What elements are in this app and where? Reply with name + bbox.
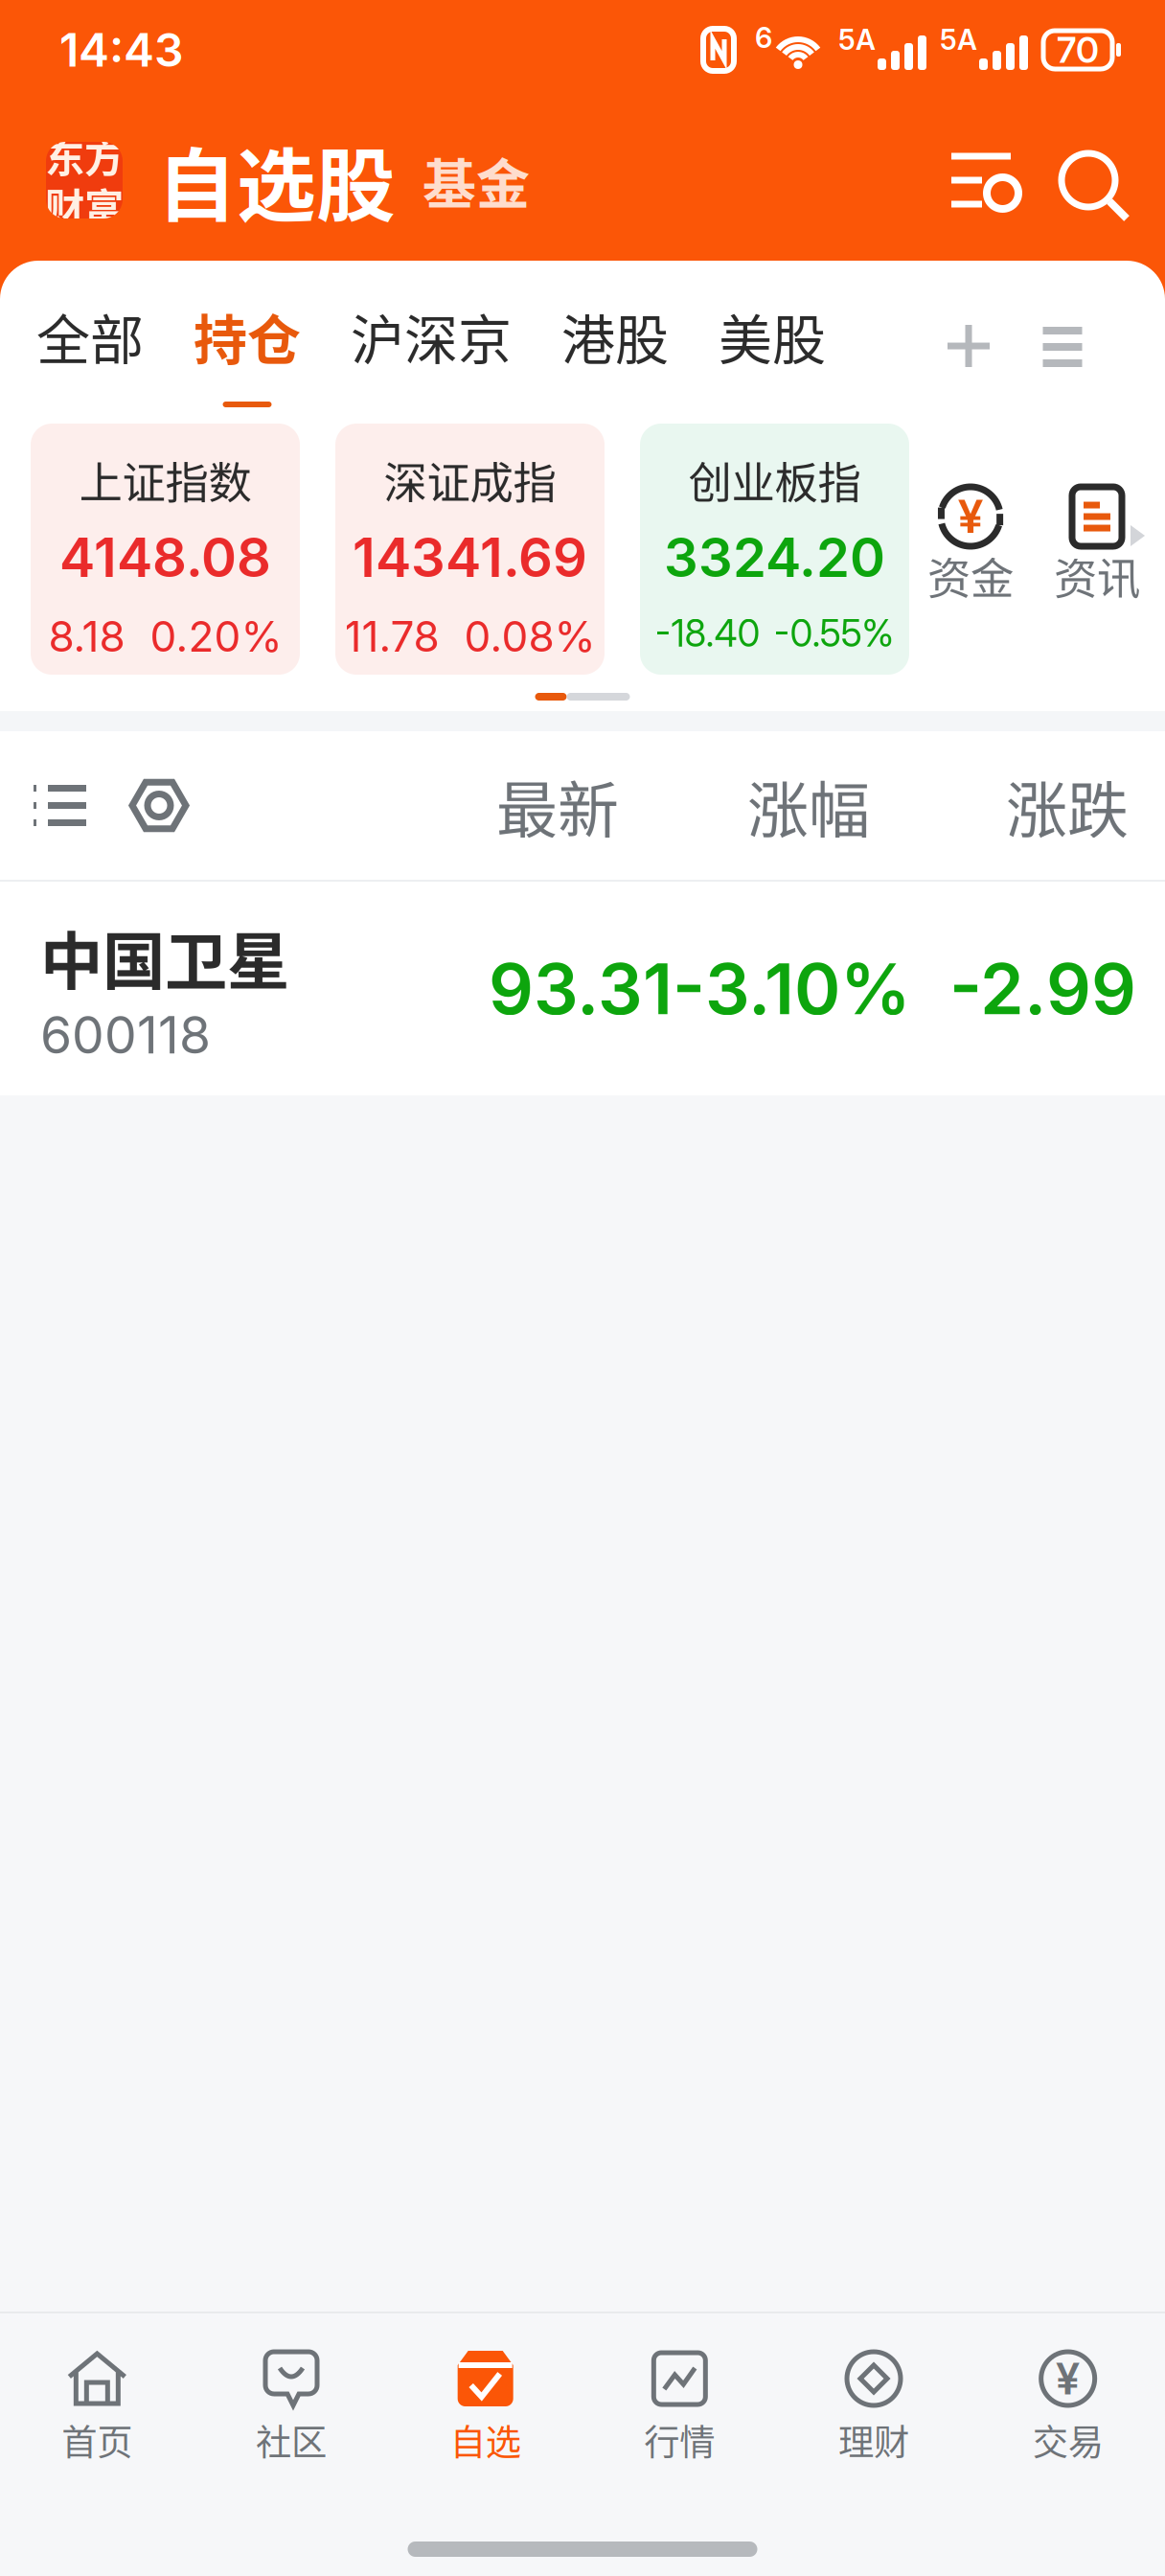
staticText: -18.40: [655, 611, 760, 656]
staticText: 14341.69: [353, 525, 587, 590]
staticText: 社区: [256, 2414, 327, 2466]
staticText: ¥: [958, 489, 983, 544]
staticText: 自选: [450, 2414, 521, 2466]
staticText: 8.18: [48, 611, 125, 662]
staticText: 持仓: [194, 297, 301, 375]
staticText: 5A: [838, 23, 876, 57]
staticText: 涨跌: [1006, 761, 1129, 850]
button[interactable]: Add stock: [923, 300, 1015, 392]
staticText: 深证成指: [384, 448, 556, 511]
staticText: -3.10%: [673, 946, 911, 1031]
staticText: 美股: [719, 297, 826, 375]
staticText: 0.08%: [464, 611, 595, 662]
button[interactable]: 首页: [0, 2349, 194, 2482]
button[interactable]: Change list layout: [19, 765, 100, 846]
staticText: 中国卫星: [40, 911, 289, 1002]
staticText: 涨幅: [747, 761, 870, 850]
staticText: 基金: [423, 141, 530, 219]
staticText: 沪深京: [351, 297, 512, 375]
staticText: 全部: [36, 297, 144, 375]
staticText: 交易: [1033, 2414, 1103, 2466]
staticText: 14:43: [59, 22, 184, 78]
button[interactable]: 社区: [194, 2349, 388, 2482]
button[interactable]: 持仓: [169, 261, 326, 410]
staticText: 港股: [561, 297, 669, 375]
staticText: ¥: [1055, 2352, 1080, 2405]
button[interactable]: Search: [1037, 128, 1140, 232]
button[interactable]: ¥: [911, 441, 1030, 692]
button[interactable]: 美股: [694, 261, 851, 410]
staticText: -0.55%: [774, 611, 894, 656]
staticText: 4148.08: [59, 525, 271, 590]
staticText: 600118: [40, 1004, 211, 1066]
button[interactable]: ¥: [971, 2349, 1165, 2482]
button[interactable]: 创业板指: [640, 424, 909, 675]
staticText: 3324.20: [664, 525, 885, 590]
button[interactable]: 自选: [388, 2349, 582, 2482]
staticText: 资讯: [1054, 544, 1140, 607]
staticText: 创业板指: [688, 448, 861, 511]
button[interactable]: 中国卫星: [0, 882, 1165, 1095]
button[interactable]: 上证指数: [31, 424, 300, 675]
staticText: 首页: [62, 2414, 132, 2466]
staticText: 理财: [838, 2414, 909, 2466]
button[interactable]: 全部: [11, 261, 169, 410]
button[interactable]: 沪深京: [326, 261, 537, 410]
staticText: -2.99: [949, 946, 1136, 1031]
staticText: 11.78: [344, 611, 439, 662]
staticText: 自选股: [157, 123, 396, 237]
staticText: 70: [1057, 28, 1099, 71]
button[interactable]: Sort settings: [929, 128, 1033, 232]
button[interactable]: 行情: [582, 2349, 777, 2482]
staticText: 东方: [45, 127, 124, 184]
staticText: 财富: [45, 176, 124, 234]
staticText: 资金: [927, 544, 1014, 607]
staticText: 0.20%: [150, 611, 282, 662]
button[interactable]: Manage watchlists: [1017, 300, 1108, 392]
button[interactable]: 理财: [777, 2349, 971, 2482]
button[interactable]: 深证成指: [335, 424, 605, 675]
staticText: 93.31: [489, 946, 673, 1031]
staticText: 上证指数: [79, 448, 251, 511]
staticText: 5A: [940, 23, 977, 57]
button[interactable]: 港股: [537, 261, 694, 410]
button[interactable]: 资讯: [1038, 441, 1156, 692]
staticText: 最新: [496, 761, 619, 850]
staticText: 6: [755, 21, 772, 55]
staticText: 行情: [644, 2414, 715, 2466]
button[interactable]: List settings: [119, 765, 199, 846]
